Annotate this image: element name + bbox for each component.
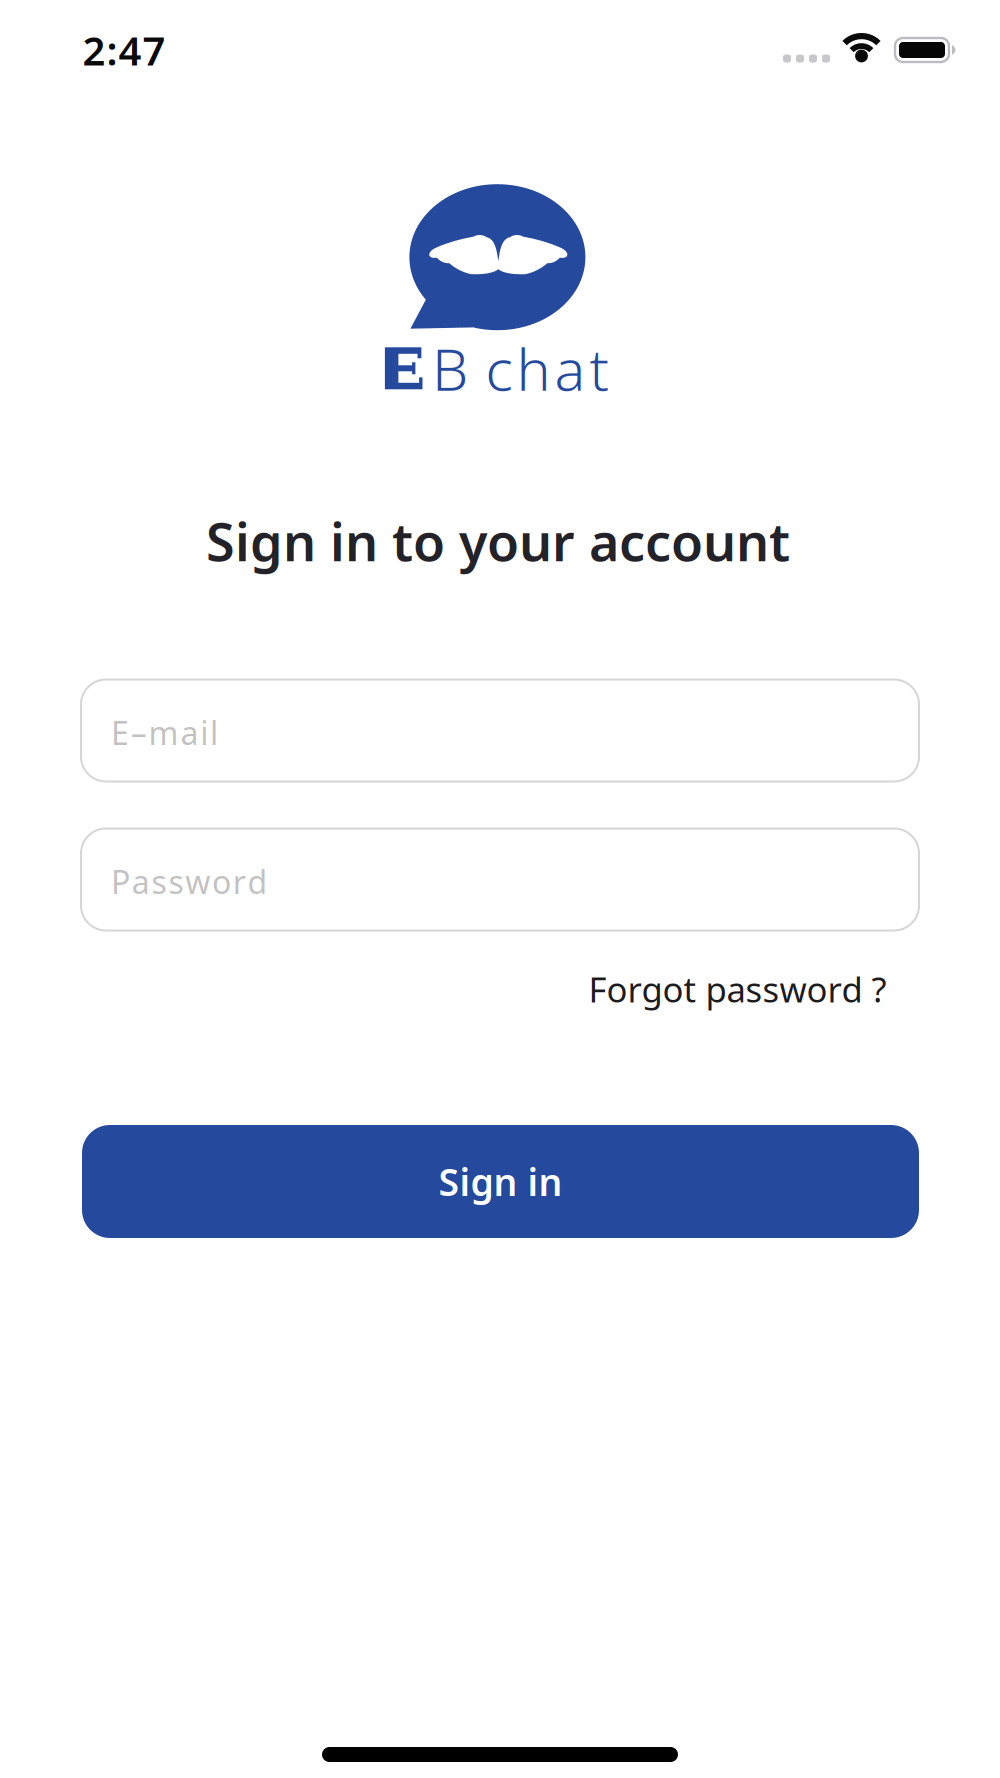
staticText: E–mail [111, 711, 218, 754]
button[interactable]: E–mail [81, 679, 919, 781]
button[interactable]: Sign in [82, 1125, 919, 1238]
button[interactable]: Password [81, 828, 919, 930]
staticText: Password [111, 860, 268, 903]
staticText: Forgot password ? [588, 966, 886, 1012]
staticText: 2:47 [82, 23, 165, 76]
button[interactable]: Forgot password ? [588, 966, 886, 1012]
staticText: B [432, 330, 468, 406]
staticText: Sign in to your account [206, 506, 790, 576]
staticText: chat [485, 330, 608, 406]
staticText: Sign in [438, 1157, 562, 1206]
